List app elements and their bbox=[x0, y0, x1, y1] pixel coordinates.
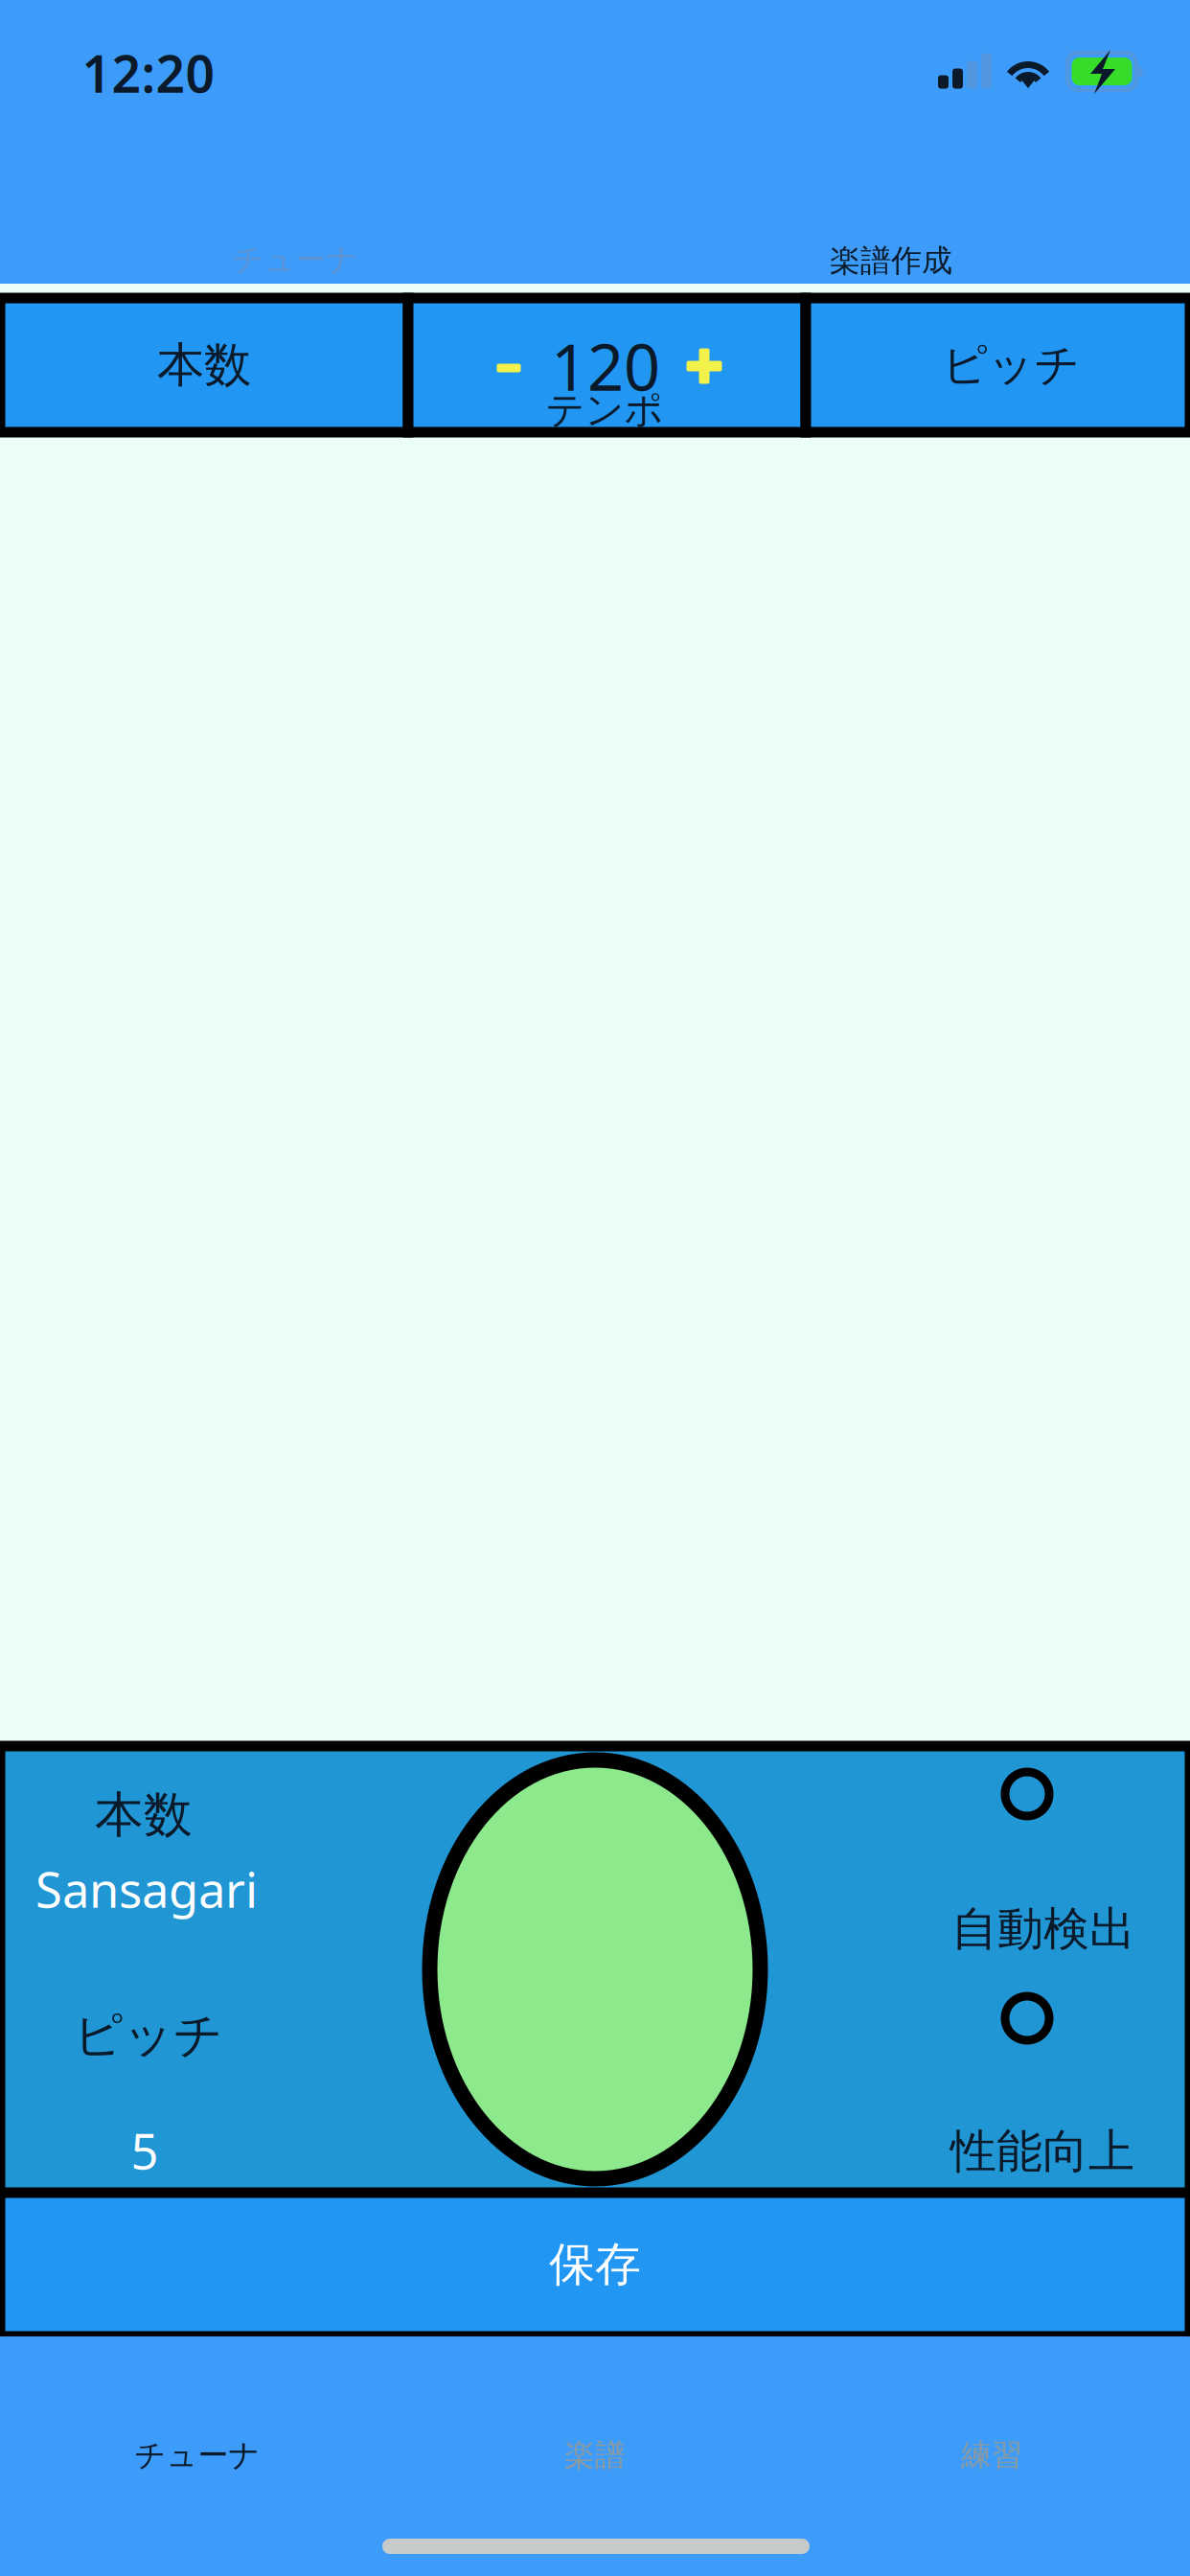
staticText: 楽譜作成 bbox=[830, 242, 952, 279]
button[interactable]: 自動検出 bbox=[1005, 1772, 1049, 1816]
staticText: テンポ bbox=[546, 387, 664, 434]
staticText: チューナ bbox=[135, 2436, 260, 2474]
button[interactable]: 120 bbox=[408, 298, 806, 432]
button[interactable]: 楽譜作成 bbox=[709, 234, 1073, 287]
button[interactable]: 練習 bbox=[848, 2422, 1135, 2489]
staticText: 本数 bbox=[95, 1785, 193, 1845]
staticText: チューナ bbox=[232, 241, 358, 278]
button[interactable]: 保存 bbox=[0, 2193, 1190, 2336]
staticText: 自動検出 bbox=[951, 1901, 1135, 1957]
staticText: 性能向上 bbox=[950, 2123, 1134, 2180]
staticText: 5 bbox=[131, 2118, 159, 2183]
staticText: 120 bbox=[551, 324, 660, 408]
button[interactable]: ピッチ bbox=[806, 298, 1190, 432]
staticText: ピッチ bbox=[942, 338, 1080, 393]
staticText: 楽譜 bbox=[564, 2436, 626, 2474]
button[interactable]: 性能向上 bbox=[1005, 1996, 1049, 2040]
staticText: Sansagari bbox=[35, 1857, 258, 1921]
staticText: 本数 bbox=[157, 336, 251, 394]
button[interactable]: 本数 bbox=[0, 298, 408, 432]
button[interactable]: チューナ bbox=[54, 2422, 341, 2489]
staticText: ピッチ bbox=[74, 2006, 223, 2065]
button[interactable]: チューナ bbox=[113, 233, 477, 287]
button[interactable]: 楽譜 bbox=[451, 2422, 739, 2489]
staticText: 練習 bbox=[961, 2436, 1022, 2474]
staticText: 保存 bbox=[549, 2236, 641, 2293]
staticText: 12:20 bbox=[82, 39, 215, 107]
